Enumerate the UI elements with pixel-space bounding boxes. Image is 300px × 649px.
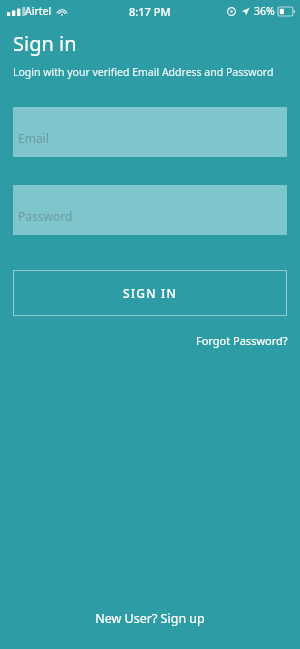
staticText: 36% [254,4,275,18]
staticText: Sign in [13,30,77,57]
staticText: Airtel [25,4,52,18]
button[interactable]: Password [13,185,287,235]
button[interactable]: Email [13,107,287,157]
staticText: 8:17 PM [129,4,171,19]
staticText: Email [18,130,49,146]
button[interactable]: SIGN IN [13,270,287,316]
button[interactable]: Forgot Password? [196,333,288,348]
staticText: New User? Sign up [95,610,205,627]
staticText: Login with your verified Email Address a… [13,65,274,79]
staticText: Password [18,208,73,224]
staticText: Forgot Password? [196,333,288,348]
staticText: SIGN IN [123,285,177,301]
button[interactable]: New User? Sign up [0,610,300,627]
